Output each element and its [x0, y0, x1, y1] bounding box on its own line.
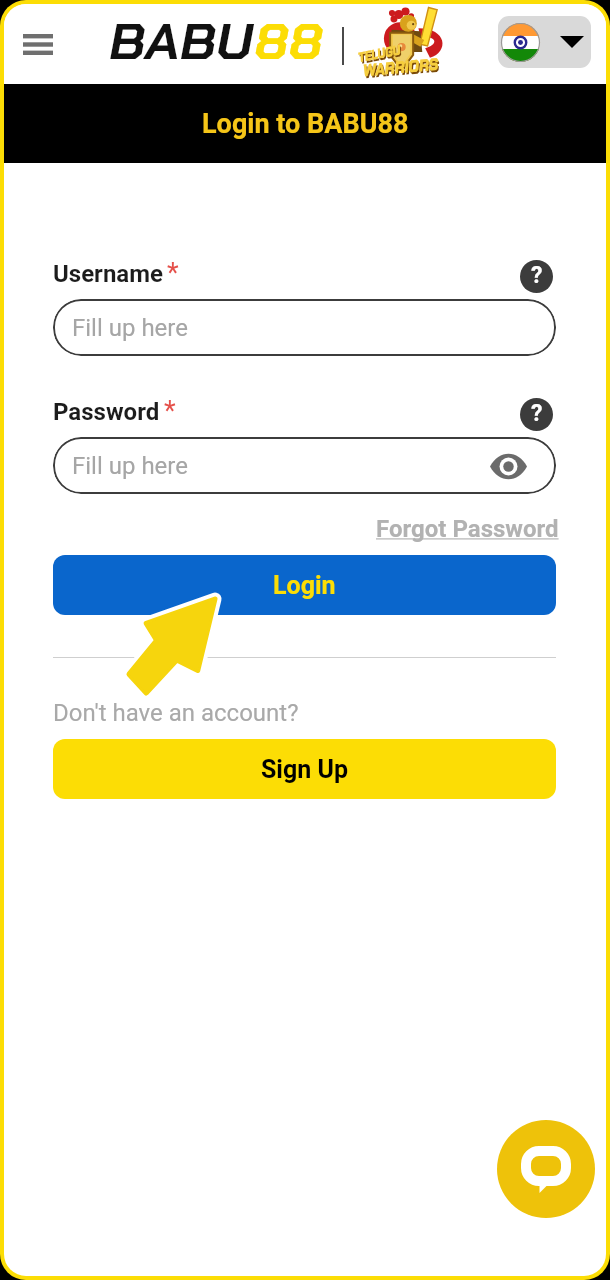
staticText: Don't have an account? [53, 699, 299, 727]
staticText: Login [273, 571, 336, 600]
button[interactable]: Fill up here [53, 299, 556, 356]
staticText: Password [53, 398, 160, 426]
button[interactable]: Help [520, 260, 553, 293]
button[interactable]: Menu [12, 18, 64, 70]
staticText: * [167, 257, 179, 289]
staticText: ? [531, 262, 543, 289]
staticText: TELUGU [357, 41, 402, 66]
button[interactable]: Open live chat [497, 1120, 595, 1218]
button[interactable]: Sign Up [53, 739, 556, 799]
staticText: Username [53, 260, 163, 288]
staticText: TELUGU [358, 43, 403, 68]
staticText: WARRIORS [363, 55, 440, 83]
button[interactable]: Help [520, 398, 553, 431]
button[interactable]: Show password [486, 444, 530, 488]
staticText: Sign Up [261, 755, 349, 784]
staticText: WARRIORS [362, 53, 439, 81]
button[interactable]: Fill up here [53, 437, 556, 494]
staticText: ? [531, 400, 543, 427]
staticText: Fill up here [72, 452, 188, 480]
staticText: Fill up here [72, 314, 188, 342]
staticText: Login to BABU88 [202, 108, 409, 140]
staticText: * [164, 395, 176, 427]
button[interactable]: Login [53, 555, 556, 615]
button[interactable]: Forgot Password [376, 515, 559, 543]
staticText: BABU [109, 9, 254, 74]
staticText: 88 [254, 9, 323, 74]
button[interactable]: Select language [498, 16, 591, 68]
